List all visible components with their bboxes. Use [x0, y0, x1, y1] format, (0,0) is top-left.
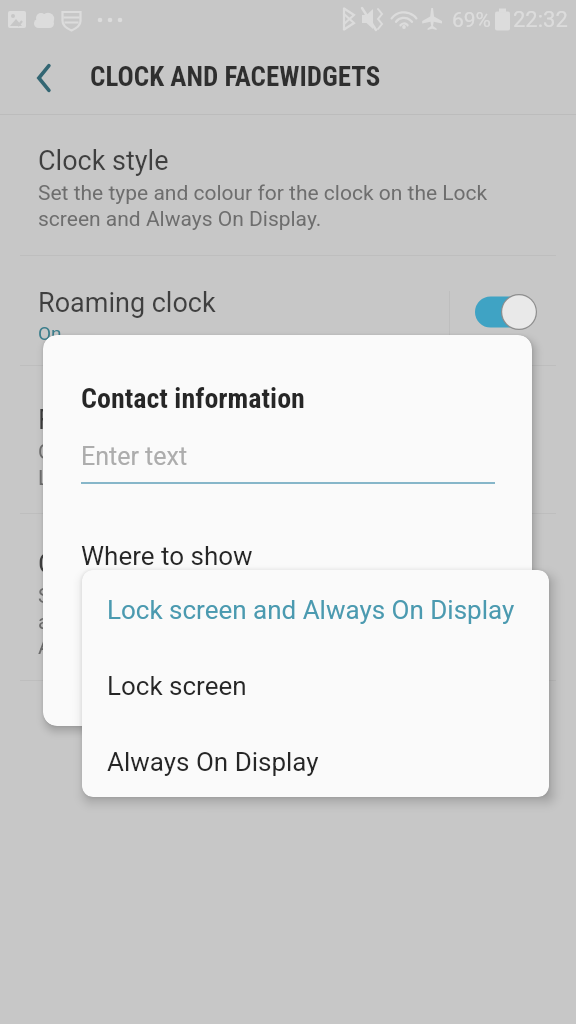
- button[interactable]: Contact information: [0, 527, 576, 637]
- staticText: Contact information: [38, 548, 279, 580]
- button[interactable]: Lock screen: [82, 646, 549, 722]
- button[interactable]: Always On Display: [82, 722, 549, 797]
- staticText: Lock screen and Always On Display: [107, 595, 515, 625]
- staticText: Contact information: [81, 382, 305, 415]
- button[interactable]: FaceWidgets: [0, 383, 576, 493]
- staticText: Always On Display: [107, 747, 319, 777]
- staticText: Show information such as your phone numb…: [38, 584, 492, 659]
- button[interactable]: Roaming clock switch: [474, 293, 538, 331]
- staticText: CLOCK AND FACEWIDGETS: [90, 61, 381, 93]
- staticText: 22:32: [513, 7, 568, 33]
- staticText: Where to show: [81, 541, 253, 571]
- button[interactable]: Navigate back: [1, 46, 89, 109]
- staticText: Get quick access to useful information o…: [38, 440, 462, 490]
- staticText: FaceWidgets: [38, 404, 194, 436]
- staticText: Lock screen: [107, 671, 247, 701]
- button[interactable]: Lock screen and Always On Display: [82, 570, 549, 646]
- staticText: Enter text: [81, 442, 188, 471]
- staticText: On: [38, 322, 62, 344]
- staticText: Set the type and colour for the clock on…: [38, 181, 488, 231]
- staticText: Clock style: [38, 145, 169, 177]
- staticText: 69%: [452, 8, 491, 33]
- staticText: Roaming clock: [38, 287, 216, 319]
- button[interactable]: Clock style: [0, 124, 576, 234]
